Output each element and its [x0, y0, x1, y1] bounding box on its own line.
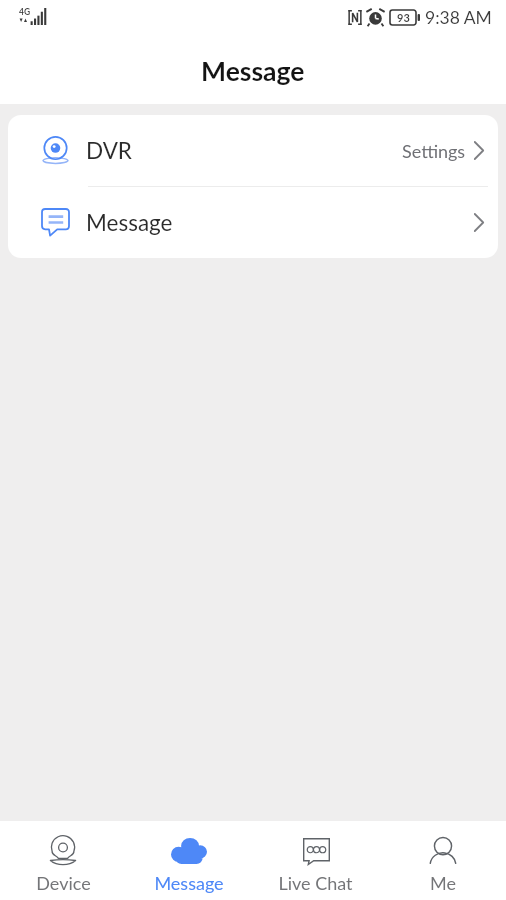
staticText: Live Chat [278, 872, 353, 894]
button[interactable]: DVR [8, 115, 498, 186]
staticText: Device [36, 872, 91, 894]
button[interactable]: Message [8, 187, 498, 258]
staticText: Message [86, 209, 173, 236]
staticText: Message [154, 872, 224, 894]
staticText: 93 [397, 11, 410, 24]
button[interactable]: Device [0, 821, 126, 900]
staticText: Message [201, 55, 305, 87]
staticText: DVR [86, 137, 132, 164]
staticText: 4G [19, 7, 31, 17]
staticText: Me [430, 872, 456, 894]
staticText: 9:38 AM [425, 7, 492, 28]
staticText: Settings [402, 140, 466, 162]
button[interactable]: Me [379, 821, 506, 900]
button[interactable]: Live Chat [252, 821, 379, 900]
button[interactable]: Message [126, 821, 252, 900]
